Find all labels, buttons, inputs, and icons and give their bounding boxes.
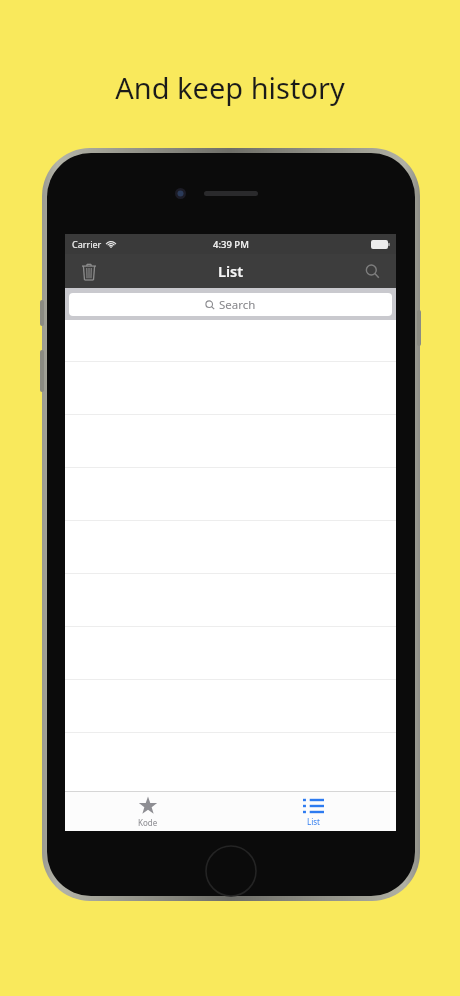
button[interactable]: Search: [69, 293, 392, 316]
button[interactable]: List: [230, 792, 396, 831]
staticText: List: [307, 816, 320, 827]
staticText: Carrier: [72, 238, 102, 250]
staticText: Kode: [138, 817, 158, 828]
button[interactable]: Kode: [65, 792, 230, 831]
staticText: List: [218, 261, 244, 281]
staticText: And keep history: [115, 68, 345, 107]
staticText: Search: [219, 297, 256, 313]
button[interactable]: Delete all: [73, 255, 105, 287]
staticText: 4:39 PM: [213, 238, 249, 251]
button[interactable]: Search: [356, 255, 388, 287]
